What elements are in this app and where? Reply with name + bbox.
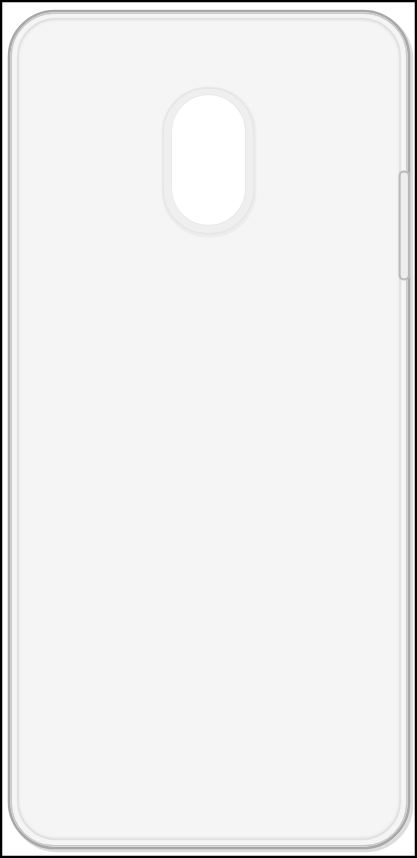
button[interactable]: Phone case back illustration [0,0,417,858]
